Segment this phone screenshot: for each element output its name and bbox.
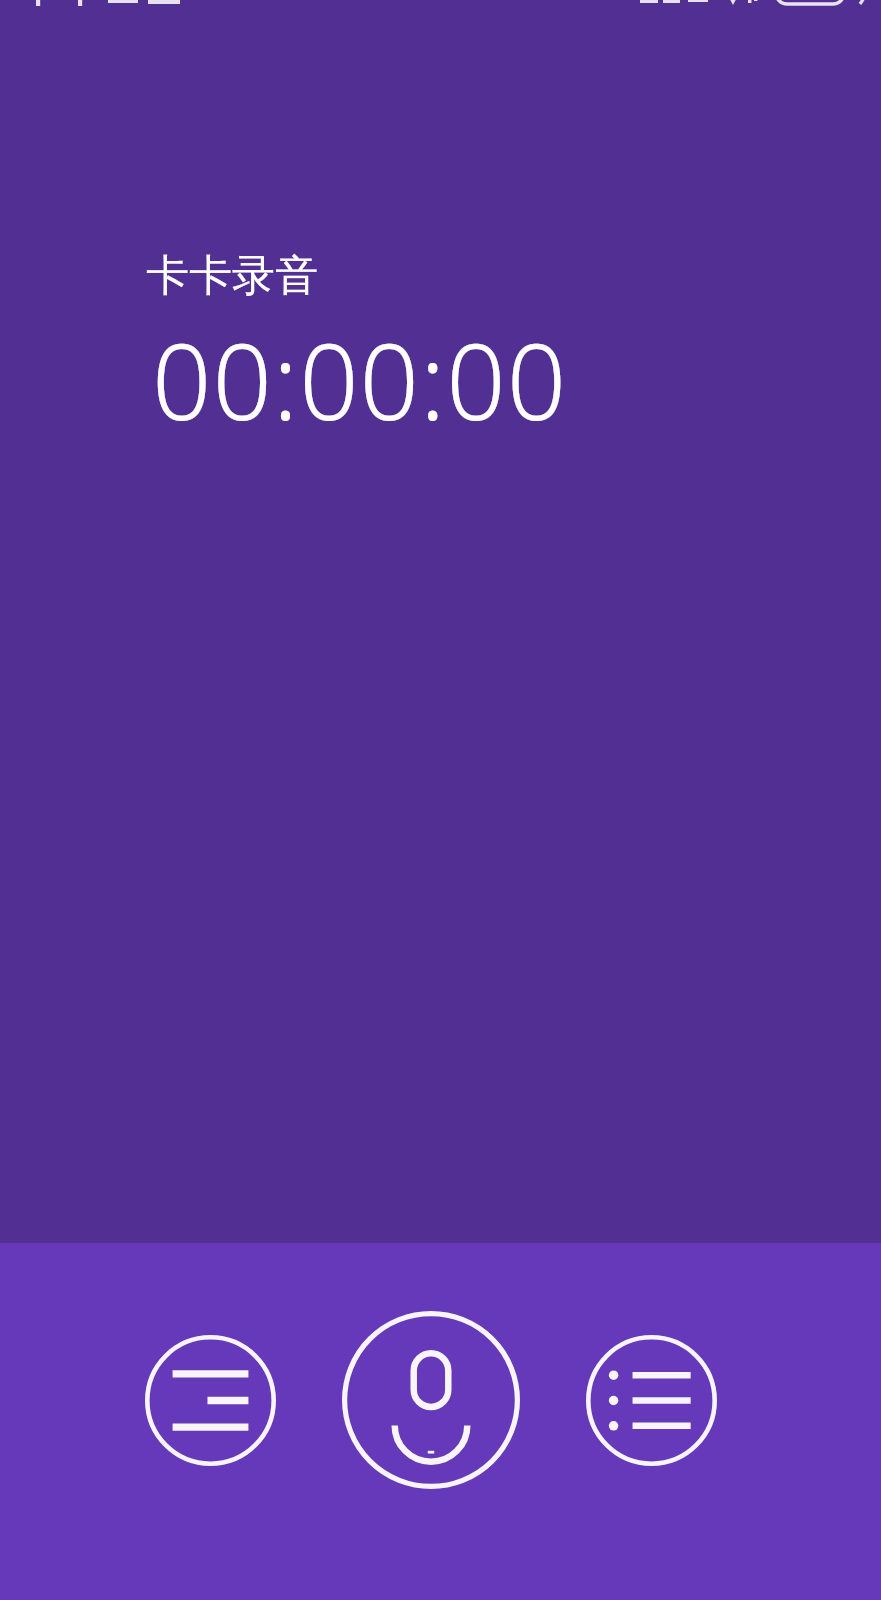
staticText: 00:00:00: [152, 309, 568, 451]
button[interactable]: Record: [342, 1311, 520, 1489]
button[interactable]: Recording list: [586, 1335, 717, 1466]
staticText: 卡卡录音: [146, 249, 318, 303]
button[interactable]: Sort recordings: [145, 1335, 276, 1466]
